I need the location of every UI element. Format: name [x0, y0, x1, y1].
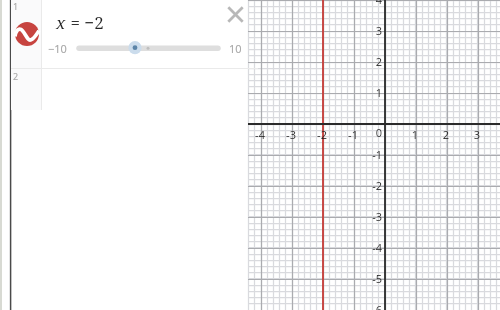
staticText: -6 [352, 302, 382, 310]
button[interactable]: Expression 1: x = -2 [11, 0, 247, 68]
button[interactable]: x [56, 11, 104, 34]
staticText: 3 [462, 127, 492, 142]
staticText: 10 [229, 41, 242, 56]
staticText: 2 [431, 127, 461, 142]
staticText: -2 [307, 127, 337, 142]
staticText: 1 [13, 0, 19, 12]
button[interactable]: Close [224, 3, 247, 26]
staticText: -2 [352, 178, 382, 193]
staticText: x [56, 11, 66, 34]
staticText: = −2 [66, 11, 104, 34]
button[interactable]: Toggle graph [15, 22, 39, 46]
staticText: -3 [276, 127, 306, 142]
staticText: 1 [400, 127, 430, 142]
staticText: 2 [13, 70, 19, 82]
staticText: -4 [352, 240, 382, 255]
staticText: -1 [352, 147, 382, 162]
staticText: 2 [352, 54, 382, 69]
staticText: 3 [352, 23, 382, 38]
staticText: 4 [352, 0, 382, 7]
button[interactable]: Add expression [11, 69, 247, 110]
staticText: -5 [352, 271, 382, 286]
button[interactable]: Graph paper [248, 0, 500, 310]
staticText: -3 [352, 209, 382, 224]
staticText: -4 [245, 127, 275, 142]
staticText: −10 [48, 41, 67, 56]
button[interactable]: Slider for x [68, 38, 230, 58]
staticText: 1 [352, 85, 382, 100]
staticText: -1 [338, 127, 368, 142]
staticText: 0 [352, 125, 382, 140]
